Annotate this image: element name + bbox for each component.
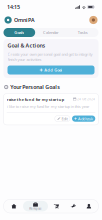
button[interactable]: Goals (3, 28, 35, 37)
staticText: Tasks (78, 30, 88, 35)
staticText: Calendar (43, 30, 59, 35)
button[interactable]: Workspace (23, 201, 48, 211)
staticText: raise the fund for my startup (7, 97, 65, 102)
button[interactable]: Profile (89, 16, 97, 24)
button[interactable]: Profile (81, 201, 97, 211)
staticText: Edit (62, 116, 68, 121)
button[interactable]: Trips (65, 201, 81, 211)
staticText: Your Personal Goals (10, 83, 60, 91)
staticText: Create your own personal goal and get to… (7, 51, 92, 62)
staticText: Workspace (29, 207, 42, 210)
button[interactable]: Home (5, 201, 23, 211)
staticText: OmniPA (14, 16, 35, 24)
button[interactable]: Add Goal (7, 65, 94, 74)
staticText: 24 Oct 2024 (77, 97, 95, 101)
button[interactable]: Edit (55, 115, 70, 122)
button[interactable]: Calendar (35, 28, 67, 37)
staticText: Goal & Actions (7, 42, 45, 49)
button[interactable]: Tasks (67, 28, 98, 37)
staticText: Add task (78, 116, 93, 121)
staticText: Goals (14, 30, 24, 35)
staticText: i like to raise my fund for my startup i… (7, 104, 90, 109)
button[interactable]: Shop (48, 201, 65, 211)
button[interactable]: Add task (72, 115, 95, 122)
staticText: 14:15 (7, 3, 20, 11)
staticText: Add Goal (44, 67, 62, 73)
